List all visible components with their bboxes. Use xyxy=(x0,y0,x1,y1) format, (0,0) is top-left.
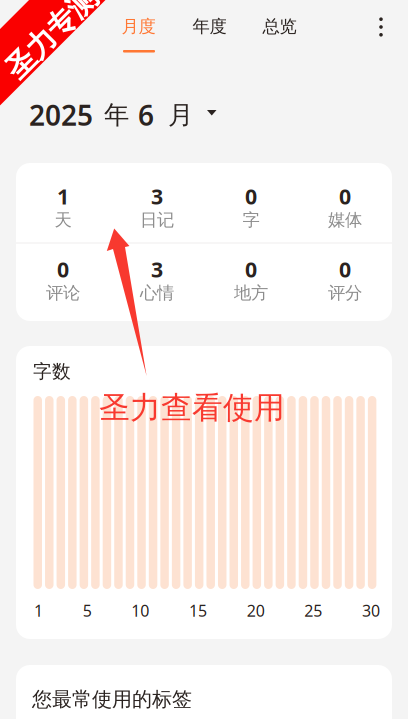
staticText: 月 xyxy=(168,99,193,130)
staticText: 3 xyxy=(151,255,163,283)
button[interactable]: 月度 xyxy=(103,4,173,48)
staticText: 圣力查看使用 xyxy=(99,389,285,427)
staticText: 媒体 xyxy=(328,209,362,231)
staticText: 月度 xyxy=(121,16,155,37)
staticText: 年 xyxy=(104,99,129,130)
staticText: 10 xyxy=(131,600,149,621)
staticText: 0 xyxy=(339,182,351,210)
staticText: 3 xyxy=(151,182,163,210)
staticText: 0 xyxy=(57,255,69,283)
staticText: 25 xyxy=(304,600,322,621)
button[interactable]: 年度 xyxy=(174,4,244,48)
staticText: 总览 xyxy=(262,16,296,37)
button[interactable]: 总览 xyxy=(244,4,314,48)
staticText: 评分 xyxy=(328,282,362,304)
staticText: 15 xyxy=(189,600,207,621)
staticText: 20 xyxy=(247,600,265,621)
staticText: 圣力专测 xyxy=(0,15,109,51)
staticText: 2025 xyxy=(29,96,93,134)
staticText: 字 xyxy=(242,209,259,231)
staticText: 年度 xyxy=(192,16,226,37)
staticText: 1 xyxy=(57,182,69,210)
button[interactable]: 2025 xyxy=(29,93,216,137)
staticText: 1 xyxy=(34,600,43,621)
staticText: 评论 xyxy=(46,282,80,304)
staticText: 0 xyxy=(339,255,351,283)
staticText: 地方 xyxy=(234,282,268,304)
staticText: 6 xyxy=(138,96,154,134)
staticText: 日记 xyxy=(140,209,174,231)
staticText: 字数 xyxy=(33,360,71,383)
staticText: 0 xyxy=(245,182,257,210)
button[interactable]: More options xyxy=(356,2,406,52)
staticText: 心情 xyxy=(140,282,174,304)
staticText: 您最常使用的标签 xyxy=(32,687,192,712)
staticText: 5 xyxy=(83,600,92,621)
staticText: 天 xyxy=(54,209,71,231)
staticText: 30 xyxy=(362,600,380,621)
staticText: 0 xyxy=(245,255,257,283)
